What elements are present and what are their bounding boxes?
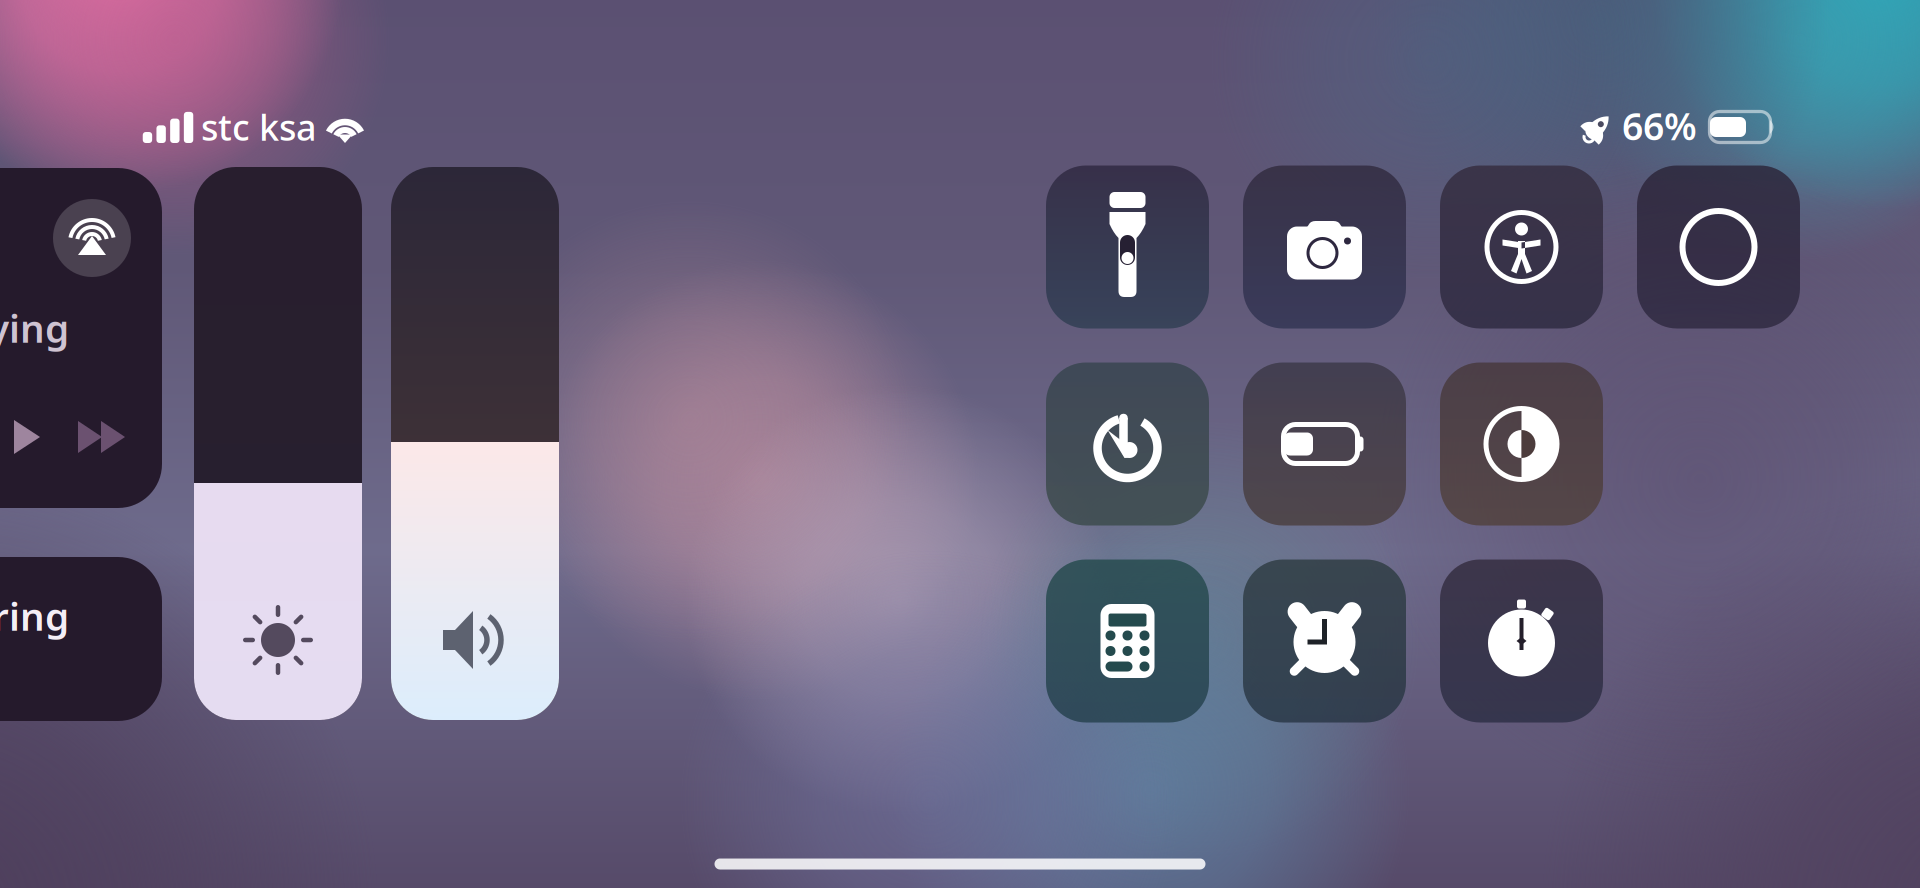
- staticText: stc ksa: [201, 103, 317, 151]
- staticText: 66%: [1622, 101, 1697, 151]
- button[interactable]: [391, 167, 559, 720]
- staticText: Screen Mirroring: [0, 590, 69, 641]
- staticText: Not Playing: [0, 302, 69, 353]
- button[interactable]: Screen Mirroring: [0, 557, 162, 721]
- button[interactable]: Not Playing: [0, 168, 162, 508]
- button[interactable]: [194, 167, 362, 720]
